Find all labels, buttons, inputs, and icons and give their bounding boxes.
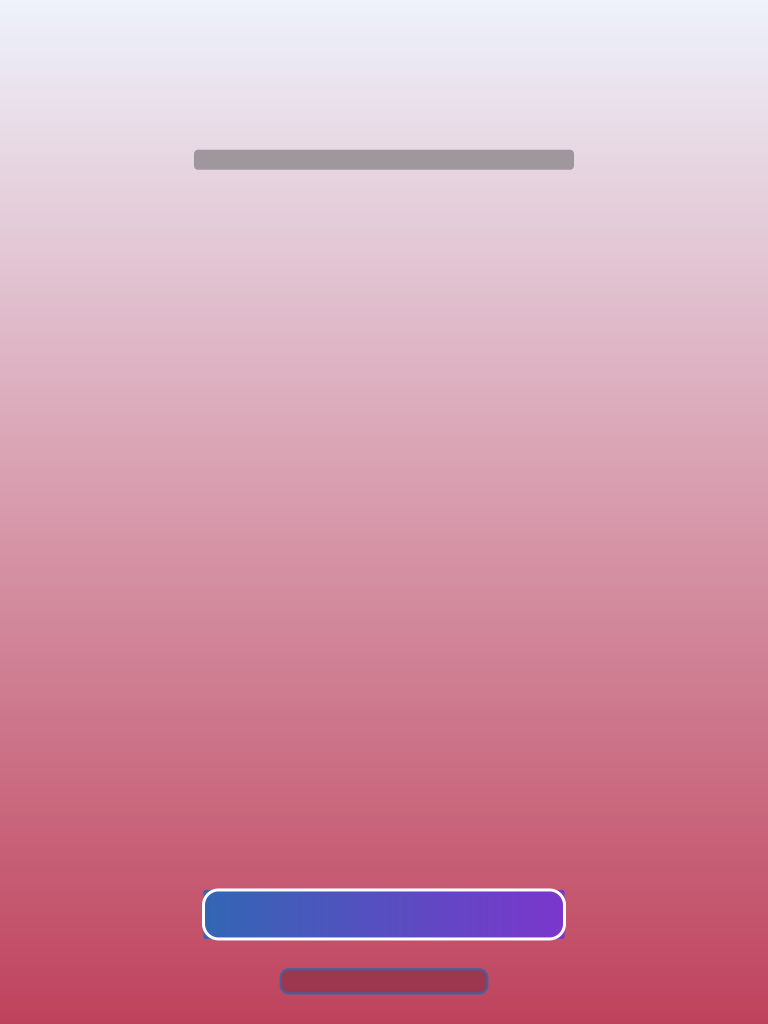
button[interactable]: Secondary action (281, 969, 487, 993)
button[interactable]: Continue (203, 890, 564, 939)
